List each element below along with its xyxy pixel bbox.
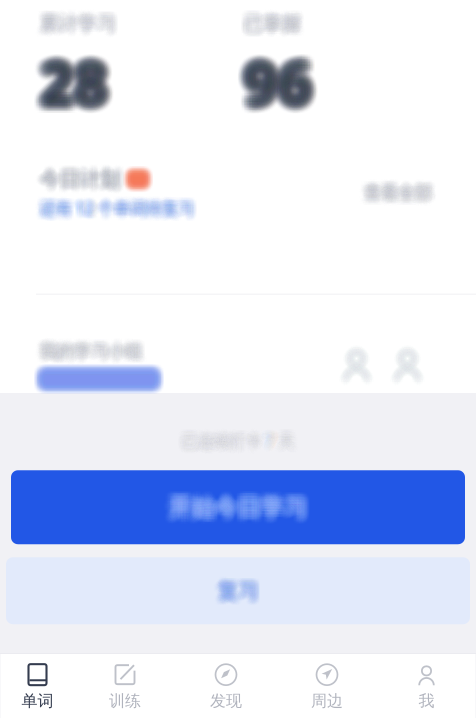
staticText: 已掌握 — [246, 8, 303, 31]
staticText: 28 — [38, 46, 106, 124]
staticText: 已掌握 — [245, 16, 302, 39]
staticText: 28 — [32, 46, 100, 124]
staticText: 累计学习 — [37, 7, 113, 30]
staticText: 28 — [42, 38, 110, 116]
staticText: 28 — [35, 48, 103, 126]
staticText: 今日计划 — [37, 166, 117, 190]
staticText: 累计学习 — [39, 8, 115, 31]
staticText: 96 — [241, 38, 309, 116]
staticText: 复习 — [219, 577, 259, 602]
staticText: 查看全部 — [365, 180, 433, 201]
staticText: 复习 — [213, 576, 253, 601]
staticText: 累计学习 — [36, 9, 112, 32]
staticText: 查看全部 — [369, 177, 437, 198]
staticText: 我的学习小组 — [37, 343, 139, 364]
staticText: 还有 12 个单词待复习 — [41, 200, 195, 221]
staticText: 96 — [239, 41, 307, 119]
staticText: 96 — [246, 44, 314, 122]
staticText: 96 — [246, 35, 314, 113]
staticText: 28 — [45, 49, 113, 127]
staticText: 今日计划 — [36, 171, 116, 195]
staticText: 累计学习 — [41, 16, 117, 39]
staticText: 已掌握 — [240, 13, 297, 36]
staticText: 96 — [244, 41, 312, 119]
staticText: 28 — [42, 46, 110, 124]
staticText: 累计学习 — [36, 13, 112, 36]
staticText: 今日计划 — [41, 168, 121, 193]
staticText: 我的学习小组 — [41, 346, 143, 367]
staticText: 我的学习小组 — [36, 337, 138, 358]
staticText: 查看全部 — [366, 178, 434, 200]
staticText: 复习 — [220, 578, 260, 603]
staticText: 开始今日学习 — [169, 493, 307, 521]
staticText: 96 — [238, 49, 306, 127]
staticText: 已掌握 — [241, 11, 298, 34]
button[interactable]: 查看全部 — [364, 182, 476, 203]
staticText: 复习 — [217, 575, 257, 599]
staticText: 累计学习 — [42, 14, 118, 37]
staticText: 96 — [244, 36, 312, 114]
staticText: 查看全部 — [364, 187, 432, 208]
staticText: 今日计划 — [37, 163, 117, 188]
staticText: 今日计划 — [39, 171, 119, 195]
button[interactable]: 我的学习小组 — [0, 295, 476, 388]
staticText: 28 — [34, 48, 102, 126]
staticText: 今日计划 — [37, 164, 117, 189]
staticText: 查看全部 — [361, 181, 429, 202]
staticText: 已掌握 — [240, 9, 297, 32]
staticText: 96 — [246, 41, 314, 119]
staticText: 今日计划 — [44, 163, 124, 188]
staticText: 还有 12 个单词待复习 — [37, 202, 191, 224]
staticText: 已连续打卡 7 天 — [179, 434, 292, 455]
staticText: 开始今日学习 — [170, 489, 308, 517]
staticText: 96 — [250, 49, 318, 127]
staticText: 查看全部 — [365, 181, 433, 202]
staticText: 复习 — [219, 583, 259, 608]
staticText: 累计学习 — [37, 9, 113, 32]
staticText: 查看全部 — [366, 186, 434, 207]
button[interactable]: 训练 — [74, 653, 175, 718]
staticText: 已掌握 — [246, 9, 303, 32]
staticText: 还有 12 个单词待复习 — [44, 194, 198, 215]
staticText: 96 — [241, 35, 309, 113]
button[interactable]: 发现 — [175, 653, 276, 718]
staticText: 查看全部 — [361, 177, 429, 198]
staticText: 今日计划 — [45, 169, 125, 194]
staticText: 96 — [252, 46, 320, 124]
staticText: 查看全部 — [363, 183, 431, 205]
button[interactable]: 开始今日学习 — [11, 470, 465, 544]
staticText: 开始今日学习 — [173, 498, 311, 526]
staticText: 96 — [249, 44, 317, 122]
staticText: 还有 12 个单词待复习 — [44, 197, 198, 219]
staticText: 96 — [250, 51, 318, 129]
staticText: 查看全部 — [359, 187, 427, 208]
staticText: 查看全部 — [360, 187, 428, 208]
button[interactable]: 周边 — [276, 653, 377, 718]
button[interactable]: 复习 — [6, 557, 470, 624]
button[interactable]: 单词 — [0, 653, 74, 718]
staticText: 查看全部 — [369, 180, 437, 201]
staticText: 已掌握 — [245, 8, 302, 31]
staticText: 我的学习小组 — [35, 338, 137, 359]
staticText: 已连续打卡 7 天 — [178, 426, 291, 447]
button[interactable]: 我 — [377, 653, 475, 718]
staticText: 28 — [43, 36, 111, 114]
staticText: 今日计划 — [37, 169, 117, 194]
staticText: 今日计划 — [35, 168, 115, 193]
staticText: 开始今日学习 — [164, 493, 302, 521]
staticText: 开始今日学习 — [173, 492, 311, 520]
staticText: 我的学习小组 — [39, 337, 141, 358]
staticText: 已掌握 — [239, 14, 296, 37]
staticText: 已连续打卡 7 天 — [186, 427, 299, 449]
staticText: 查看全部 — [369, 185, 437, 206]
staticText: 开始今日学习 — [164, 496, 302, 524]
staticText: 累计学习 — [44, 7, 120, 30]
staticText: 我的学习小组 — [35, 341, 137, 362]
staticText: 还有 12 个单词待复习 — [40, 195, 194, 216]
staticText: 累计学习 — [41, 8, 117, 31]
staticText: 28 — [38, 38, 106, 116]
staticText: 我的学习小组 — [40, 344, 142, 366]
staticText: 96 — [239, 36, 307, 114]
staticText: 查看全部 — [359, 177, 427, 198]
staticText: 28 — [34, 51, 102, 129]
